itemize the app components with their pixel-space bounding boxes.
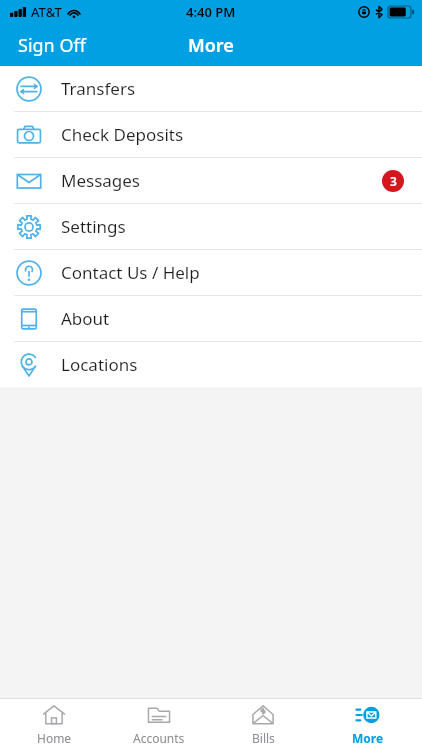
staticText: Bills bbox=[252, 730, 275, 746]
staticText: Accounts bbox=[133, 730, 185, 746]
staticText: Sign Off bbox=[18, 33, 86, 58]
staticText: Messages bbox=[61, 169, 141, 192]
staticText: Contact Us / Help bbox=[61, 261, 200, 284]
button[interactable]: Transfers bbox=[0, 66, 422, 111]
button[interactable]: Messages bbox=[0, 158, 422, 203]
staticText: More bbox=[188, 33, 234, 58]
staticText: More bbox=[352, 730, 384, 746]
staticText: 4:40 PM bbox=[186, 3, 236, 21]
staticText: About bbox=[61, 307, 110, 330]
staticText: Check Deposits bbox=[61, 123, 184, 146]
staticText: AT&T bbox=[31, 3, 62, 21]
button[interactable]: About bbox=[0, 296, 422, 341]
button[interactable]: Accounts bbox=[109, 699, 209, 750]
button[interactable]: Locations bbox=[0, 342, 422, 387]
button[interactable]: Sign Off bbox=[0, 25, 104, 66]
staticText: Locations bbox=[61, 353, 138, 376]
button[interactable]: Check Deposits bbox=[0, 112, 422, 157]
staticText: Transfers bbox=[61, 77, 136, 100]
button[interactable]: Settings bbox=[0, 204, 422, 249]
staticText: Settings bbox=[61, 215, 126, 238]
button[interactable]: Bills bbox=[213, 699, 313, 750]
button[interactable]: Contact Us / Help bbox=[0, 250, 422, 295]
button[interactable]: More bbox=[318, 699, 418, 750]
staticText: Home bbox=[37, 730, 72, 746]
button[interactable]: Home bbox=[4, 699, 104, 750]
staticText: 3 bbox=[390, 173, 397, 189]
